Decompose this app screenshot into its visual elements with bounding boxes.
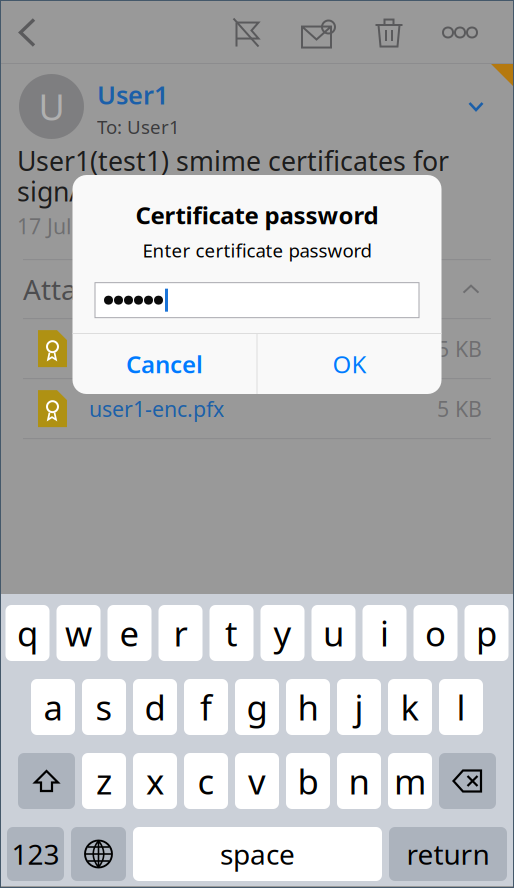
staticText: a — [43, 684, 62, 730]
button[interactable]: Cancel — [72, 334, 256, 394]
staticText: o — [425, 610, 446, 656]
staticText: m — [394, 758, 426, 804]
button[interactable]: a — [31, 679, 75, 735]
button[interactable]: i — [362, 605, 406, 661]
button[interactable]: u — [311, 605, 355, 661]
button[interactable]: p — [464, 605, 508, 661]
button[interactable]: x — [133, 753, 177, 809]
staticText: f — [200, 684, 212, 730]
button[interactable]: b — [286, 753, 330, 809]
staticText: b — [297, 758, 318, 804]
staticText: h — [297, 684, 318, 730]
button[interactable]: 123 — [7, 827, 64, 881]
staticText: OK — [332, 348, 366, 380]
button[interactable]: More — [425, 2, 495, 63]
staticText: t — [225, 610, 238, 656]
button[interactable]: return — [389, 827, 507, 881]
staticText: g — [246, 684, 267, 730]
staticText: User1(test1) smime certificates for — [17, 143, 449, 178]
staticText: To: User1 — [97, 114, 180, 139]
staticText: r — [173, 610, 187, 656]
staticText: U — [38, 83, 64, 130]
button[interactable]: Delete — [439, 753, 496, 809]
button[interactable]: s — [82, 679, 126, 735]
staticText: s — [95, 684, 112, 730]
button[interactable]: Flag — [210, 2, 282, 63]
button[interactable]: n — [337, 753, 381, 809]
staticText: p — [476, 610, 497, 656]
button[interactable]: k — [388, 679, 432, 735]
staticText: 123 — [11, 835, 59, 873]
button[interactable]: r — [158, 605, 202, 661]
staticText: c — [197, 758, 214, 804]
staticText: q — [17, 610, 38, 656]
button[interactable]: m — [388, 753, 432, 809]
button[interactable]: f — [184, 679, 228, 735]
staticText: n — [348, 758, 369, 804]
button[interactable]: h — [286, 679, 330, 735]
staticText: k — [400, 684, 419, 730]
staticText: sign/enc — [17, 173, 123, 209]
staticText: y — [273, 610, 291, 656]
button[interactable]: g — [235, 679, 279, 735]
staticText: Enter certificate password — [142, 238, 371, 263]
button[interactable]: l — [439, 679, 483, 735]
staticText: user1-sign.pfx — [89, 334, 231, 363]
staticText: x — [146, 758, 164, 804]
button[interactable]: user1-sign.pfx — [23, 319, 491, 378]
staticText: 5 KB — [437, 334, 482, 363]
button[interactable]: j — [337, 679, 381, 735]
button[interactable]: t — [209, 605, 253, 661]
button[interactable]: Shift — [18, 753, 75, 809]
staticText: Cancel — [126, 348, 203, 380]
staticText: e — [119, 610, 139, 656]
button[interactable]: q — [5, 605, 49, 661]
staticText: space — [220, 835, 295, 873]
button[interactable]: Delete — [354, 2, 424, 63]
button[interactable]: c — [184, 753, 228, 809]
button[interactable]: Back — [1, 2, 53, 63]
button[interactable]: space — [133, 827, 382, 881]
button[interactable]: user1-enc.pfx — [23, 379, 491, 438]
staticText: Certificate password — [135, 199, 378, 231]
button[interactable]: OK — [257, 334, 441, 394]
staticText: Attachments — [23, 271, 189, 308]
staticText: z — [96, 758, 112, 804]
button[interactable]: Next keyboard — [71, 827, 126, 881]
staticText: i — [380, 610, 389, 656]
staticText: user1-enc.pfx — [89, 394, 224, 423]
button[interactable]: d — [133, 679, 177, 735]
staticText: l — [456, 684, 465, 730]
staticText: 17 Jul — [17, 212, 72, 240]
button[interactable]: z — [82, 753, 126, 809]
button[interactable]: Mark as unread — [283, 2, 353, 63]
button[interactable]: e — [107, 605, 151, 661]
staticText: j — [354, 684, 363, 730]
button[interactable]: y — [260, 605, 304, 661]
button[interactable]: o — [413, 605, 457, 661]
staticText: 5 KB — [437, 394, 482, 423]
staticText: w — [65, 610, 92, 656]
button[interactable]: w — [56, 605, 100, 661]
staticText: u — [323, 610, 344, 656]
button[interactable]: Collapse attachments — [451, 272, 491, 306]
button[interactable]: v — [235, 753, 279, 809]
staticText: User1 — [97, 78, 168, 111]
button[interactable]: Show details — [447, 78, 505, 134]
staticText: v — [248, 758, 266, 804]
staticText: d — [144, 684, 165, 730]
staticText: return — [406, 835, 489, 873]
